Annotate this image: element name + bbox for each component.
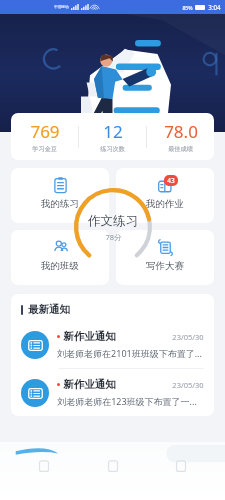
staticText: 练习次数 xyxy=(100,145,125,153)
staticText: 85% xyxy=(182,4,193,11)
button[interactable]: 43 xyxy=(116,168,214,223)
staticText: 写作大赛 xyxy=(146,260,184,272)
button[interactable]: 我的练习 xyxy=(11,168,109,223)
staticText: 中国移动 xyxy=(54,5,69,10)
button[interactable]: 我的班级 xyxy=(11,230,109,285)
staticText: 最佳成绩 xyxy=(168,145,193,153)
button[interactable]: 新作业通知 xyxy=(11,369,214,416)
staticText: 最新通知 xyxy=(28,303,70,316)
staticText: 新作业通知 xyxy=(63,330,116,343)
staticText: 我的班级 xyxy=(41,260,79,272)
staticText: 769 xyxy=(30,120,60,143)
button[interactable]: 练习 xyxy=(88,458,138,500)
staticText: 43 xyxy=(167,176,175,185)
button[interactable]: 首页 xyxy=(19,458,69,500)
staticText: 学习金豆 xyxy=(32,145,57,153)
button[interactable]: 新作业通知 xyxy=(11,321,214,368)
button[interactable]: 我的 xyxy=(156,458,206,500)
staticText: 12 xyxy=(103,120,123,143)
staticText: 78分 xyxy=(105,232,122,242)
staticText: 刘老师老师在123班级下布置了一... xyxy=(57,395,197,407)
staticText: 我的练习 xyxy=(41,198,79,210)
staticText: 作文练习 xyxy=(88,213,138,229)
staticText: 新作业通知 xyxy=(63,378,116,391)
staticText: 我的作业 xyxy=(146,198,184,210)
staticText: 23/05/30 xyxy=(172,332,204,342)
staticText: 78.0 xyxy=(164,120,198,143)
staticText: 刘老师老师在2101班班级下布置了... xyxy=(57,347,202,359)
staticText: 23/05/30 xyxy=(172,380,204,390)
staticText: 3:04 xyxy=(208,3,221,11)
button[interactable]: 写作大赛 xyxy=(116,230,214,285)
